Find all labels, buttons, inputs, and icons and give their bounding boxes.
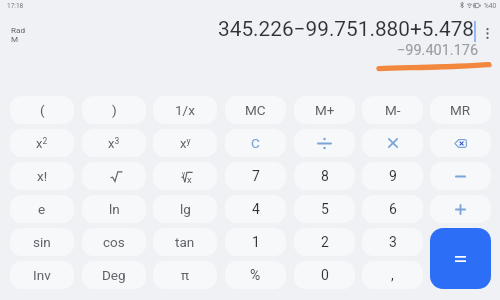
staticText: Rad xyxy=(11,25,25,34)
button[interactable]: ) xyxy=(82,96,146,124)
button[interactable]: π xyxy=(153,261,217,289)
staticText: % xyxy=(250,267,261,283)
staticText: 17:18 xyxy=(7,2,24,10)
staticText: tan xyxy=(175,234,195,250)
button[interactable]: Minus xyxy=(430,162,491,190)
button[interactable]: x3 xyxy=(82,129,146,157)
staticText: 0 xyxy=(321,267,329,283)
button[interactable]: 3 xyxy=(362,228,423,256)
staticText: 4 xyxy=(252,201,260,217)
staticText: ( xyxy=(40,102,45,118)
staticText: Inv xyxy=(33,267,51,283)
button[interactable]: Equals xyxy=(430,228,491,289)
button[interactable]: MR xyxy=(430,96,491,124)
button[interactable]: e xyxy=(10,195,74,223)
staticText: MC xyxy=(245,102,266,118)
other: Minus xyxy=(455,171,466,182)
staticText: M- xyxy=(385,102,401,118)
staticText: −99.401.176 xyxy=(397,42,479,59)
other: Backspace xyxy=(454,139,467,148)
button[interactable]: 6 xyxy=(362,195,423,223)
staticText: 3 xyxy=(389,234,397,250)
button[interactable]: ln xyxy=(82,195,146,223)
staticText: 1/x xyxy=(175,102,195,118)
staticText: 5 xyxy=(321,201,329,217)
staticText: e xyxy=(38,201,46,217)
button[interactable]: cos xyxy=(82,228,146,256)
staticText: 6 xyxy=(389,201,397,217)
staticText: 8 xyxy=(321,168,329,184)
button[interactable]: xy xyxy=(153,129,217,157)
other: Plus xyxy=(455,204,466,215)
staticText: 1 xyxy=(252,234,260,250)
button[interactable]: x2 xyxy=(10,129,74,157)
staticText: M+ xyxy=(315,102,335,118)
button[interactable]: 8 xyxy=(294,162,355,190)
staticText: x3 xyxy=(108,136,120,151)
button[interactable]: Square root xyxy=(82,162,146,190)
staticText: x2 xyxy=(36,136,48,151)
button[interactable]: Deg xyxy=(82,261,146,289)
button[interactable]: 1/x xyxy=(153,96,217,124)
staticText: x! xyxy=(37,168,48,184)
staticText: 9 xyxy=(389,168,397,184)
staticText: 345.226−99.751.880+5.478 xyxy=(218,17,475,41)
staticText: MR xyxy=(450,102,471,118)
staticText: y xyxy=(182,170,186,178)
staticText: sin xyxy=(33,234,51,250)
staticText: xy xyxy=(180,136,191,151)
button[interactable]: M- xyxy=(362,96,423,124)
button[interactable]: ( xyxy=(10,96,74,124)
staticText: , xyxy=(391,267,394,283)
staticText: π xyxy=(181,267,190,283)
button[interactable]: lg xyxy=(153,195,217,223)
other: Divide xyxy=(317,137,332,150)
button[interactable]: Multiply xyxy=(362,129,423,157)
staticText: %40 xyxy=(484,2,497,10)
button[interactable]: C xyxy=(225,129,286,157)
button[interactable]: Backspace xyxy=(430,129,491,157)
button[interactable]: Nth root xyxy=(153,162,217,190)
other: Multiply xyxy=(388,138,398,148)
button[interactable]: M+ xyxy=(294,96,355,124)
button[interactable]: 1 xyxy=(225,228,286,256)
button[interactable]: 7 xyxy=(225,162,286,190)
other: Nth root xyxy=(181,170,193,184)
staticText: cos xyxy=(103,234,125,250)
other: Square root xyxy=(110,171,123,182)
button[interactable]: x! xyxy=(10,162,74,190)
staticText: M xyxy=(11,34,19,43)
staticText: ) xyxy=(112,102,117,118)
button[interactable]: Plus xyxy=(430,195,491,223)
staticText: lg xyxy=(180,201,191,217)
button[interactable]: , xyxy=(362,261,423,289)
button[interactable]: 9 xyxy=(362,162,423,190)
button[interactable]: % xyxy=(225,261,286,289)
staticText: x xyxy=(187,174,192,185)
button[interactable]: tan xyxy=(153,228,217,256)
button[interactable]: 4 xyxy=(225,195,286,223)
button[interactable]: Inv xyxy=(10,261,74,289)
button[interactable]: 5 xyxy=(294,195,355,223)
button[interactable]: Divide xyxy=(294,129,355,157)
button[interactable]: 2 xyxy=(294,228,355,256)
button[interactable]: MC xyxy=(225,96,286,124)
staticText: Deg xyxy=(102,267,126,283)
staticText: 7 xyxy=(252,168,260,184)
staticText: 2 xyxy=(321,234,329,250)
button[interactable]: 0 xyxy=(294,261,355,289)
staticText: ln xyxy=(109,201,120,217)
staticText: C xyxy=(251,135,260,151)
button[interactable]: More options xyxy=(481,22,494,44)
button[interactable]: sin xyxy=(10,228,74,256)
